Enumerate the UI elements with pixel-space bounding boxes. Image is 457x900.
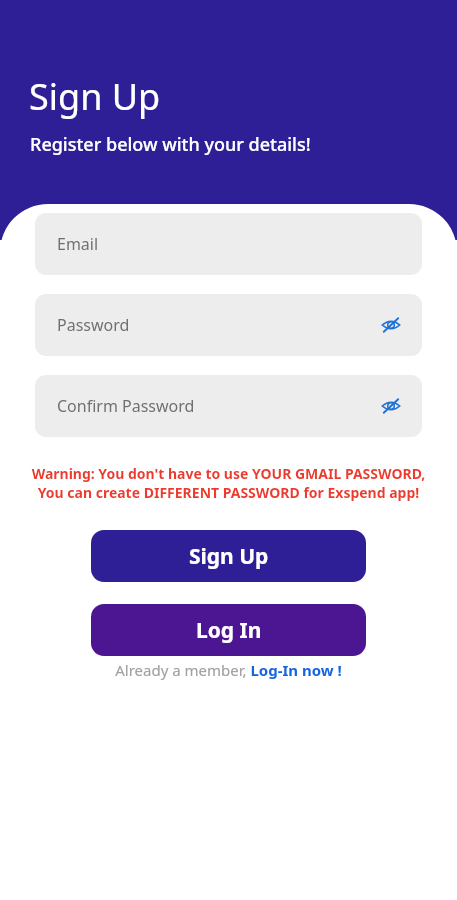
- staticText: Already a member, Log-In now !: [115, 660, 342, 680]
- button[interactable]: Log In: [91, 604, 366, 656]
- button[interactable]: Sign Up: [91, 530, 366, 582]
- button[interactable]: Email: [35, 213, 422, 275]
- staticText: Sign Up: [189, 542, 269, 571]
- staticText: Confirm Password: [57, 395, 195, 417]
- staticText: Log In: [196, 616, 262, 645]
- staticText: Register below with your details!: [30, 132, 311, 157]
- button[interactable]: Toggle password visibility: [378, 393, 404, 419]
- button[interactable]: Already a member, Log-In now !: [0, 660, 457, 680]
- staticText: Email: [57, 233, 99, 255]
- button[interactable]: Password: [35, 294, 422, 356]
- staticText: Warning: You don't have to use YOUR GMAI…: [18, 464, 439, 502]
- staticText: Password: [57, 314, 130, 336]
- staticText: Sign Up: [29, 72, 161, 121]
- button[interactable]: Confirm Password: [35, 375, 422, 437]
- button[interactable]: Toggle password visibility: [378, 312, 404, 338]
